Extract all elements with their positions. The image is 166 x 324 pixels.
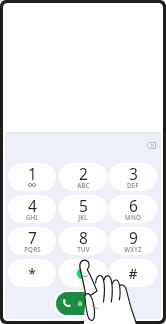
staticText: 1 — [28, 163, 37, 184]
staticText: # — [128, 264, 138, 283]
staticText: 4 — [28, 195, 37, 216]
staticText: TUV — [77, 245, 90, 253]
staticText: JKL — [78, 213, 88, 221]
button[interactable]: 0 — [59, 259, 107, 287]
staticText: * — [28, 264, 36, 283]
staticText: ABC — [77, 181, 90, 189]
button[interactable]: Backspace — [140, 136, 161, 154]
button[interactable]: * — [8, 259, 56, 287]
staticText: DEF — [127, 181, 139, 189]
button[interactable]: 2 — [59, 163, 107, 191]
staticText: 7 — [28, 227, 37, 248]
staticText: + — [81, 276, 86, 287]
staticText: 8 — [79, 227, 88, 248]
button[interactable]: # — [109, 259, 157, 287]
staticText: MNO — [125, 213, 141, 221]
staticText: 9 — [129, 227, 138, 248]
button[interactable]: Call — [56, 292, 111, 315]
button[interactable]: 7 — [8, 227, 56, 255]
button[interactable]: 9 — [109, 227, 157, 255]
staticText: 6 — [129, 195, 138, 216]
button[interactable]: 6 — [109, 195, 157, 223]
staticText: 2 — [79, 163, 88, 184]
button[interactable]: 5 — [59, 195, 107, 223]
button[interactable]: 4 — [8, 195, 56, 223]
staticText: PQRS — [24, 245, 41, 253]
staticText: 5 — [79, 195, 88, 216]
button[interactable]: 1 — [8, 163, 56, 191]
button[interactable]: 8 — [59, 227, 107, 255]
staticText: GHI — [26, 213, 38, 221]
staticText: WXYZ — [124, 245, 142, 253]
staticText: 3 — [129, 163, 138, 184]
staticText: 0 — [79, 259, 88, 280]
button[interactable]: 3 — [109, 163, 157, 191]
